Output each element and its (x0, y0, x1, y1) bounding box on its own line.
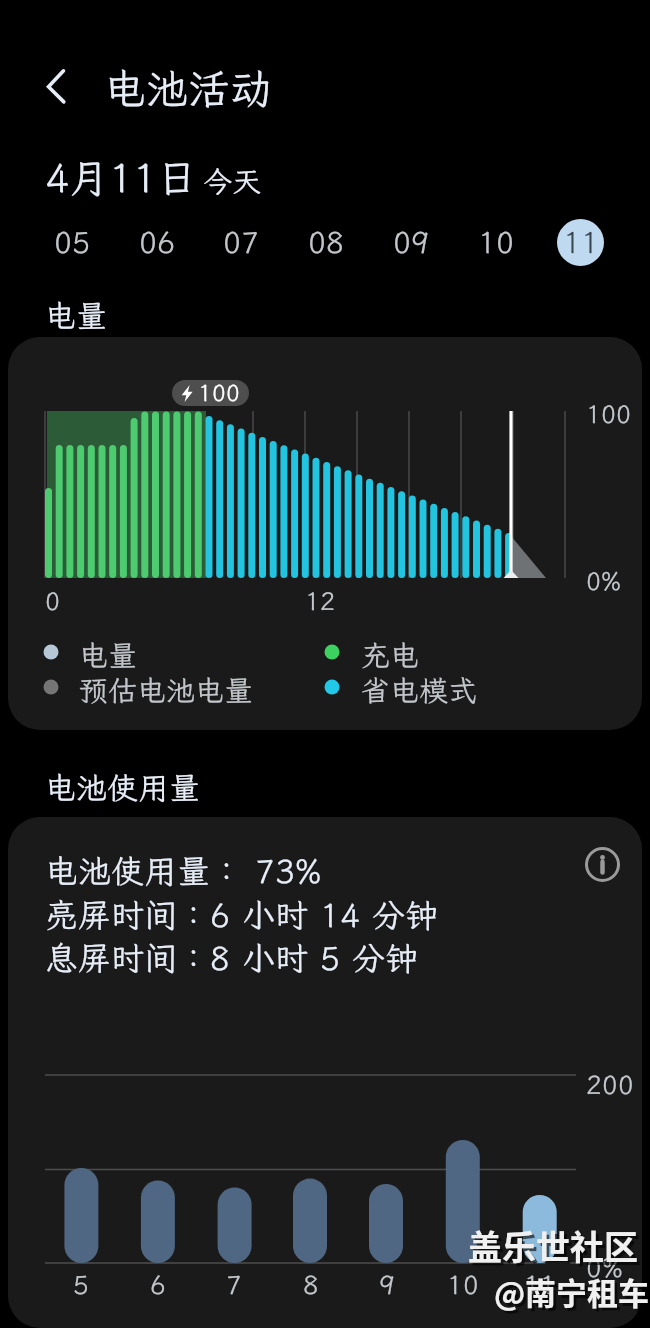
button[interactable]: 09 (380, 212, 440, 272)
staticText: 息屏时间：8 小时 5 分钟 (45, 937, 316, 971)
staticText: 0 (45, 585, 56, 611)
staticText: 0% (586, 1251, 614, 1278)
button[interactable]: 06 (126, 212, 186, 272)
staticText: 亮屏时间：6 小时 14 分钟 (45, 894, 330, 928)
staticText: 9 (379, 1268, 391, 1295)
staticText: 10 (478, 223, 504, 254)
staticText: 电量 (45, 296, 92, 325)
staticText: 7 (226, 1268, 238, 1295)
button[interactable]: 电池使用量： 73% (8, 817, 642, 1328)
staticText: 5 (73, 1268, 85, 1295)
staticText: 6 (150, 1268, 162, 1295)
staticText: 08 (308, 223, 334, 254)
button[interactable]: 10 (465, 212, 525, 272)
staticText: 电池使用量 (45, 768, 162, 797)
staticText: 09 (393, 223, 419, 254)
staticText: 充电 (361, 637, 405, 664)
staticText: 05 (54, 223, 80, 254)
staticText: 11 (563, 223, 589, 254)
staticText: 07 (223, 223, 249, 254)
staticText: 8 (303, 1268, 315, 1295)
staticText: 省电模式 (361, 672, 448, 699)
staticText: 预估电池电量 (79, 672, 210, 699)
staticText: 电量 (79, 637, 123, 664)
button[interactable]: 11 (550, 212, 610, 272)
staticText: 10 (447, 1268, 470, 1295)
button[interactable]: 05 (41, 212, 101, 272)
staticText: 4月11日 (45, 152, 157, 193)
staticText: 100 (198, 380, 228, 401)
button[interactable]: 08 (295, 212, 355, 272)
staticText: 今天 (203, 163, 247, 190)
button[interactable]: 100 (8, 337, 642, 730)
staticText: 06 (139, 223, 165, 254)
staticText: 11 (524, 1268, 547, 1295)
staticText: 200 (586, 1068, 620, 1095)
staticText: 0% (586, 565, 613, 591)
staticText: 电池使用量： 73% (45, 850, 249, 884)
button[interactable]: Info (581, 843, 623, 885)
staticText: 12 (305, 585, 327, 611)
button[interactable]: 07 (210, 212, 270, 272)
staticText: 电池活动 (104, 62, 230, 102)
staticText: 100 (586, 398, 619, 424)
button[interactable]: Back (32, 62, 80, 110)
